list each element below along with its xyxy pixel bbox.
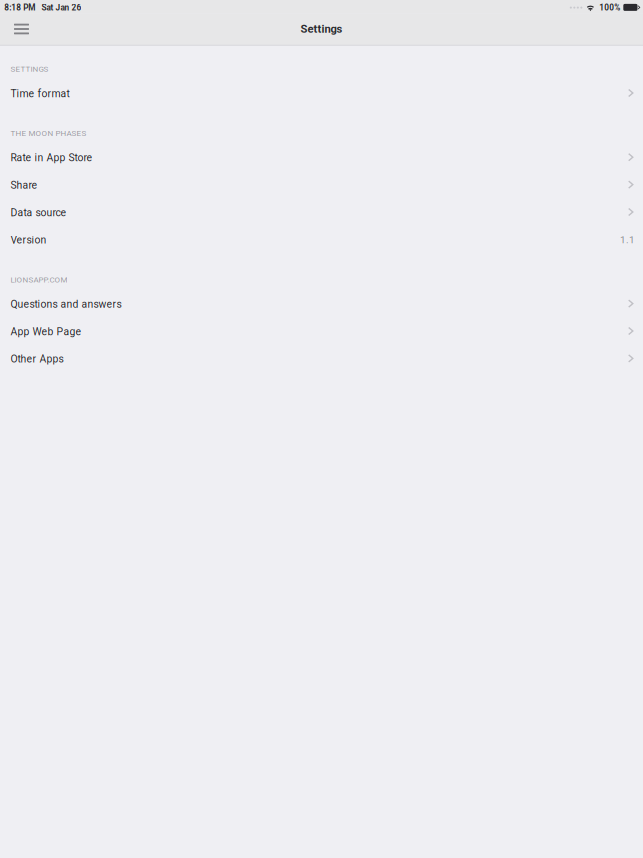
staticText: Time format [10, 87, 69, 100]
staticText: 8:18 PM [4, 3, 35, 12]
staticText: Data source [10, 206, 66, 219]
button[interactable]: Time format [0, 80, 643, 107]
staticText: Other Apps [10, 353, 63, 365]
button[interactable]: Menu [0, 16, 41, 42]
staticText: SETTINGS [10, 64, 48, 74]
button[interactable]: Other Apps [0, 345, 643, 373]
staticText: Version [10, 234, 46, 246]
button[interactable]: Version [0, 226, 643, 254]
button[interactable]: Rate in App Store [0, 144, 643, 171]
staticText: Share [10, 179, 37, 191]
button[interactable]: App Web Page [0, 318, 643, 345]
staticText: Sat Jan 26 [41, 3, 81, 12]
button[interactable]: Data source [0, 199, 643, 226]
staticText: App Web Page [10, 325, 81, 338]
staticText: Questions and answers [10, 298, 121, 310]
staticText: LIONSAPP.COM [10, 275, 67, 284]
button[interactable]: Share [0, 171, 643, 199]
staticText: THE MOON PHASES [10, 129, 86, 138]
button[interactable]: Questions and answers [0, 290, 643, 318]
staticText: 1.1 [620, 234, 635, 246]
staticText: 100% [599, 3, 620, 12]
staticText: Settings [300, 22, 342, 35]
staticText: Rate in App Store [10, 152, 92, 164]
